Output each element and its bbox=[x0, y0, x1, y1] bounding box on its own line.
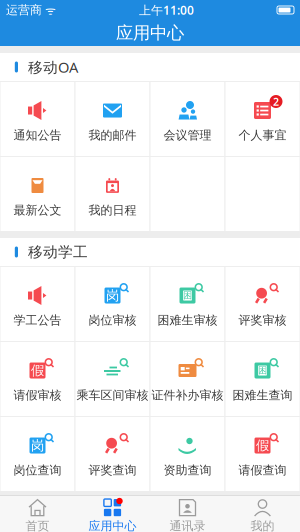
staticText: 运营商 bbox=[6, 3, 42, 17]
button[interactable]: 我的 bbox=[225, 496, 300, 532]
staticText: 请假查询 bbox=[238, 463, 286, 478]
button[interactable]: 证件补办审核 bbox=[150, 342, 224, 416]
button[interactable]: 通讯录 bbox=[150, 496, 225, 532]
button[interactable]: 假 bbox=[0, 342, 74, 416]
staticText: 通知公告 bbox=[13, 128, 61, 143]
staticText: 我的邮件 bbox=[88, 128, 136, 143]
button[interactable]: 岗 bbox=[75, 267, 149, 341]
staticText: 资助查询 bbox=[163, 463, 211, 478]
staticText: 移动学工 bbox=[28, 243, 88, 261]
button[interactable]: 通知公告 bbox=[0, 82, 74, 156]
staticText: 最新公文 bbox=[13, 203, 61, 218]
staticText: 应用中心 bbox=[116, 22, 184, 44]
staticText: 假 bbox=[31, 362, 44, 379]
button[interactable]: 资助查询 bbox=[150, 417, 224, 491]
staticText: 困 bbox=[183, 290, 192, 301]
button[interactable]: 评奖审核 bbox=[225, 267, 299, 341]
staticText: 学工公告 bbox=[13, 313, 61, 328]
staticText: 岗 bbox=[106, 287, 119, 304]
staticText: 岗位查询 bbox=[13, 463, 61, 478]
button[interactable]: 会议管理 bbox=[150, 82, 224, 156]
button[interactable]: 假 bbox=[225, 417, 299, 491]
staticText: 个人事宜 bbox=[238, 128, 286, 143]
staticText: 请假审核 bbox=[13, 388, 61, 403]
staticText: 困难生查询 bbox=[232, 388, 292, 403]
staticText: 困难生审核 bbox=[157, 313, 217, 328]
button[interactable]: 2 bbox=[225, 82, 299, 156]
staticText: 岗位审核 bbox=[88, 313, 136, 328]
staticText: 困 bbox=[258, 365, 267, 376]
staticText: 评奖审核 bbox=[238, 313, 286, 328]
button[interactable]: 我的日程 bbox=[75, 157, 149, 231]
staticText: 评奖查询 bbox=[88, 463, 136, 478]
button[interactable]: 岗 bbox=[0, 417, 74, 491]
button[interactable]: 最新公文 bbox=[0, 157, 74, 231]
staticText: 我的 bbox=[250, 519, 274, 532]
staticText: 通讯录 bbox=[169, 519, 205, 532]
button[interactable]: 评奖查询 bbox=[75, 417, 149, 491]
button[interactable]: 我的邮件 bbox=[75, 82, 149, 156]
staticText: 2 bbox=[273, 94, 279, 109]
button[interactable]: 应用中心 bbox=[75, 496, 150, 532]
staticText: 上午11:00 bbox=[139, 2, 194, 18]
staticText: 首页 bbox=[25, 519, 49, 532]
button[interactable]: 乘车区间审核 bbox=[75, 342, 149, 416]
staticText: 会议管理 bbox=[163, 128, 211, 143]
button[interactable]: 困 bbox=[225, 342, 299, 416]
staticText: 乘车区间审核 bbox=[76, 388, 148, 403]
button[interactable]: 学工公告 bbox=[0, 267, 74, 341]
staticText: 证件补办审核 bbox=[151, 388, 223, 403]
staticText: ᯤ bbox=[42, 2, 56, 18]
button[interactable]: 困 bbox=[150, 267, 224, 341]
staticText: 假 bbox=[256, 437, 269, 454]
staticText: 应用中心 bbox=[88, 519, 136, 532]
staticText: 岗 bbox=[31, 437, 44, 454]
button[interactable]: 首页 bbox=[0, 496, 75, 532]
staticText: 移动OA bbox=[28, 57, 78, 77]
staticText: 我的日程 bbox=[88, 203, 136, 218]
